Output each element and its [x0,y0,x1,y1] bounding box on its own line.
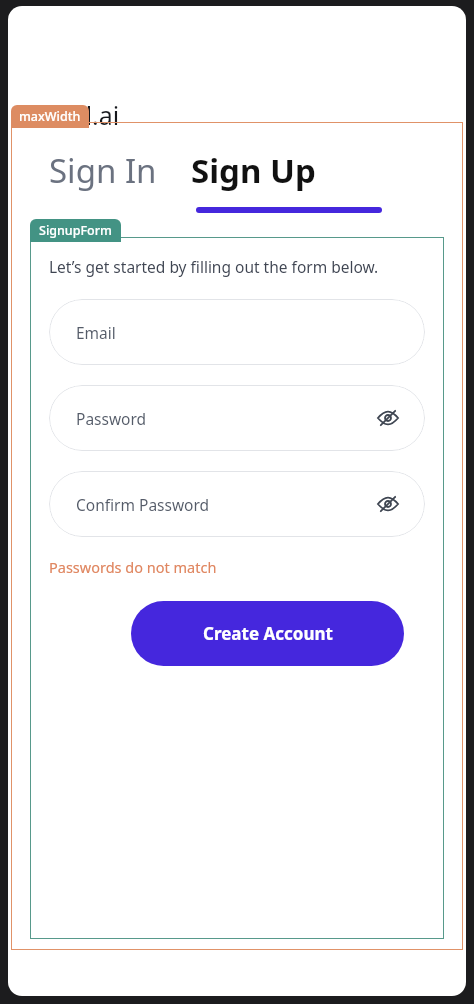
staticText: Sign Up [191,148,316,193]
staticText: Confirm Password [76,494,210,515]
button[interactable]: Sign Up [187,144,320,197]
button[interactable]: Create Account [131,601,404,666]
button[interactable]: Password [49,385,425,451]
button[interactable]: Show password [373,489,403,519]
staticText: Passwords do not match [49,557,217,577]
button[interactable]: Show password [373,403,403,433]
staticText: Password [76,408,147,429]
staticText: Email [76,322,116,343]
staticText: SignupForm [39,222,112,239]
button[interactable]: Sign In [45,144,161,197]
staticText: Sign In [49,148,157,193]
staticText: Let’s get started by filling out the for… [49,256,379,277]
staticText: maxWidth [19,108,81,125]
button[interactable]: Confirm Password [49,471,425,537]
button[interactable]: Email [49,299,425,365]
staticText: brand.ai [22,98,120,132]
staticText: Create Account [203,622,333,645]
